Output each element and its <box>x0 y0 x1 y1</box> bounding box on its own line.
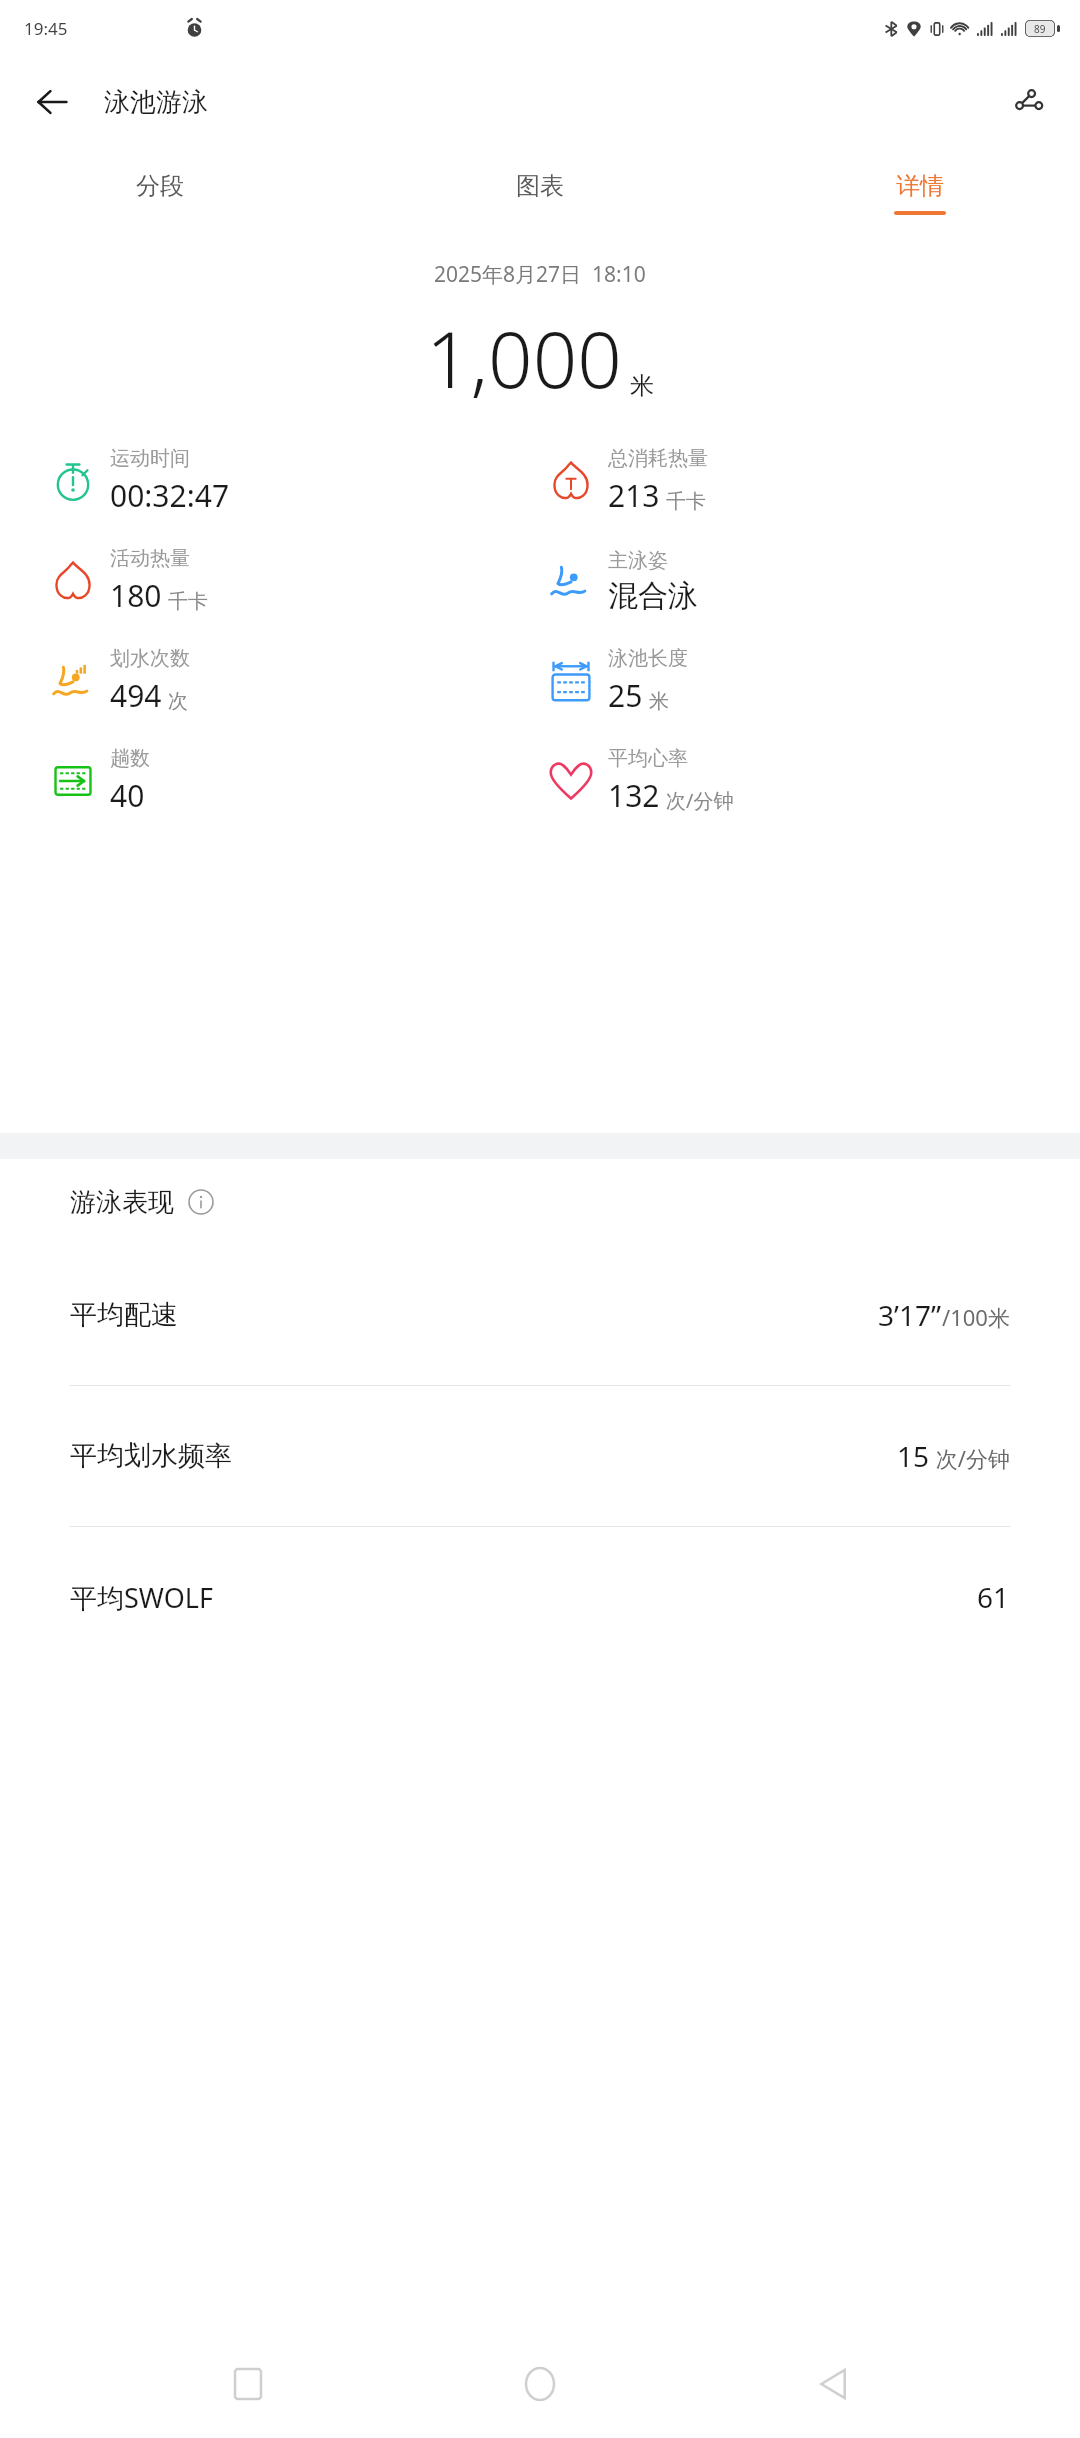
button[interactable]: Share <box>1000 74 1056 130</box>
staticText: 00:32:47 <box>110 475 230 516</box>
staticText: 89 <box>1034 22 1046 36</box>
button[interactable]: 详情 <box>860 165 980 221</box>
staticText: 泳池游泳 <box>104 86 208 119</box>
button[interactable]: 活动热量 <box>50 531 540 631</box>
button[interactable]: 泳池长度 <box>548 631 1080 731</box>
staticText: 次/分钟 <box>666 787 734 814</box>
staticText: 划水次数 <box>110 646 190 671</box>
staticText: 活动热量 <box>110 546 190 571</box>
staticText: 19:45 <box>24 17 68 40</box>
button[interactable]: 运动时间 <box>50 431 540 531</box>
button[interactable]: 平均划水频率 <box>0 1386 1080 1526</box>
staticText: 61 <box>977 1578 1010 1616</box>
staticText: 千卡 <box>666 489 706 514</box>
staticText: 平均划水频率 <box>70 1439 232 1473</box>
button[interactable]: 平均SWOLF <box>0 1527 1080 1667</box>
staticText: 180 <box>110 575 162 616</box>
button[interactable]: 平均心率 <box>548 731 1080 831</box>
button[interactable]: 图表 <box>480 165 600 221</box>
staticText: 25 <box>608 675 643 716</box>
staticText: 米 <box>649 689 669 714</box>
button[interactable]: 划水次数 <box>50 631 540 731</box>
staticText: 米 <box>630 371 654 401</box>
button[interactable]: Info <box>184 1185 218 1219</box>
button[interactable]: 趟数 <box>50 731 540 831</box>
button[interactable]: 平均配速 <box>0 1245 1080 1385</box>
staticText: 1,000 <box>426 305 622 411</box>
staticText: 泳池长度 <box>608 646 688 671</box>
staticText: 15 <box>897 1437 930 1475</box>
staticText: 2025年8月27日 18:10 <box>434 260 646 289</box>
staticText: /100米 <box>942 1302 1010 1332</box>
staticText: 次/分钟 <box>930 1443 1010 1473</box>
staticText: 3’17” <box>878 1296 942 1334</box>
staticText: 平均心率 <box>608 746 688 771</box>
staticText: 494 <box>110 675 162 716</box>
button[interactable]: Back <box>788 2339 878 2429</box>
staticText: 趟数 <box>110 746 150 771</box>
staticText: 详情 <box>896 171 944 201</box>
button[interactable]: 分段 <box>100 165 220 221</box>
button[interactable]: 总消耗热量 <box>548 431 1080 531</box>
staticText: 混合泳 <box>608 577 698 615</box>
staticText: 主泳姿 <box>608 548 668 573</box>
staticText: 游泳表现 <box>70 1186 174 1219</box>
staticText: 图表 <box>516 171 564 201</box>
staticText: 平均配速 <box>70 1298 178 1332</box>
staticText: 千卡 <box>168 589 208 614</box>
staticText: 213 <box>608 475 660 516</box>
staticText: 运动时间 <box>110 446 190 471</box>
button[interactable]: Back <box>24 74 80 130</box>
staticText: 总消耗热量 <box>608 446 708 471</box>
staticText: 次 <box>168 689 188 714</box>
button[interactable]: 主泳姿 <box>548 531 1080 631</box>
button[interactable]: Recents <box>203 2339 293 2429</box>
staticText: 分段 <box>136 171 184 201</box>
staticText: 平均SWOLF <box>70 1579 213 1616</box>
staticText: 132 <box>608 775 660 816</box>
button[interactable]: Home <box>495 2339 585 2429</box>
staticText: 40 <box>110 775 145 816</box>
